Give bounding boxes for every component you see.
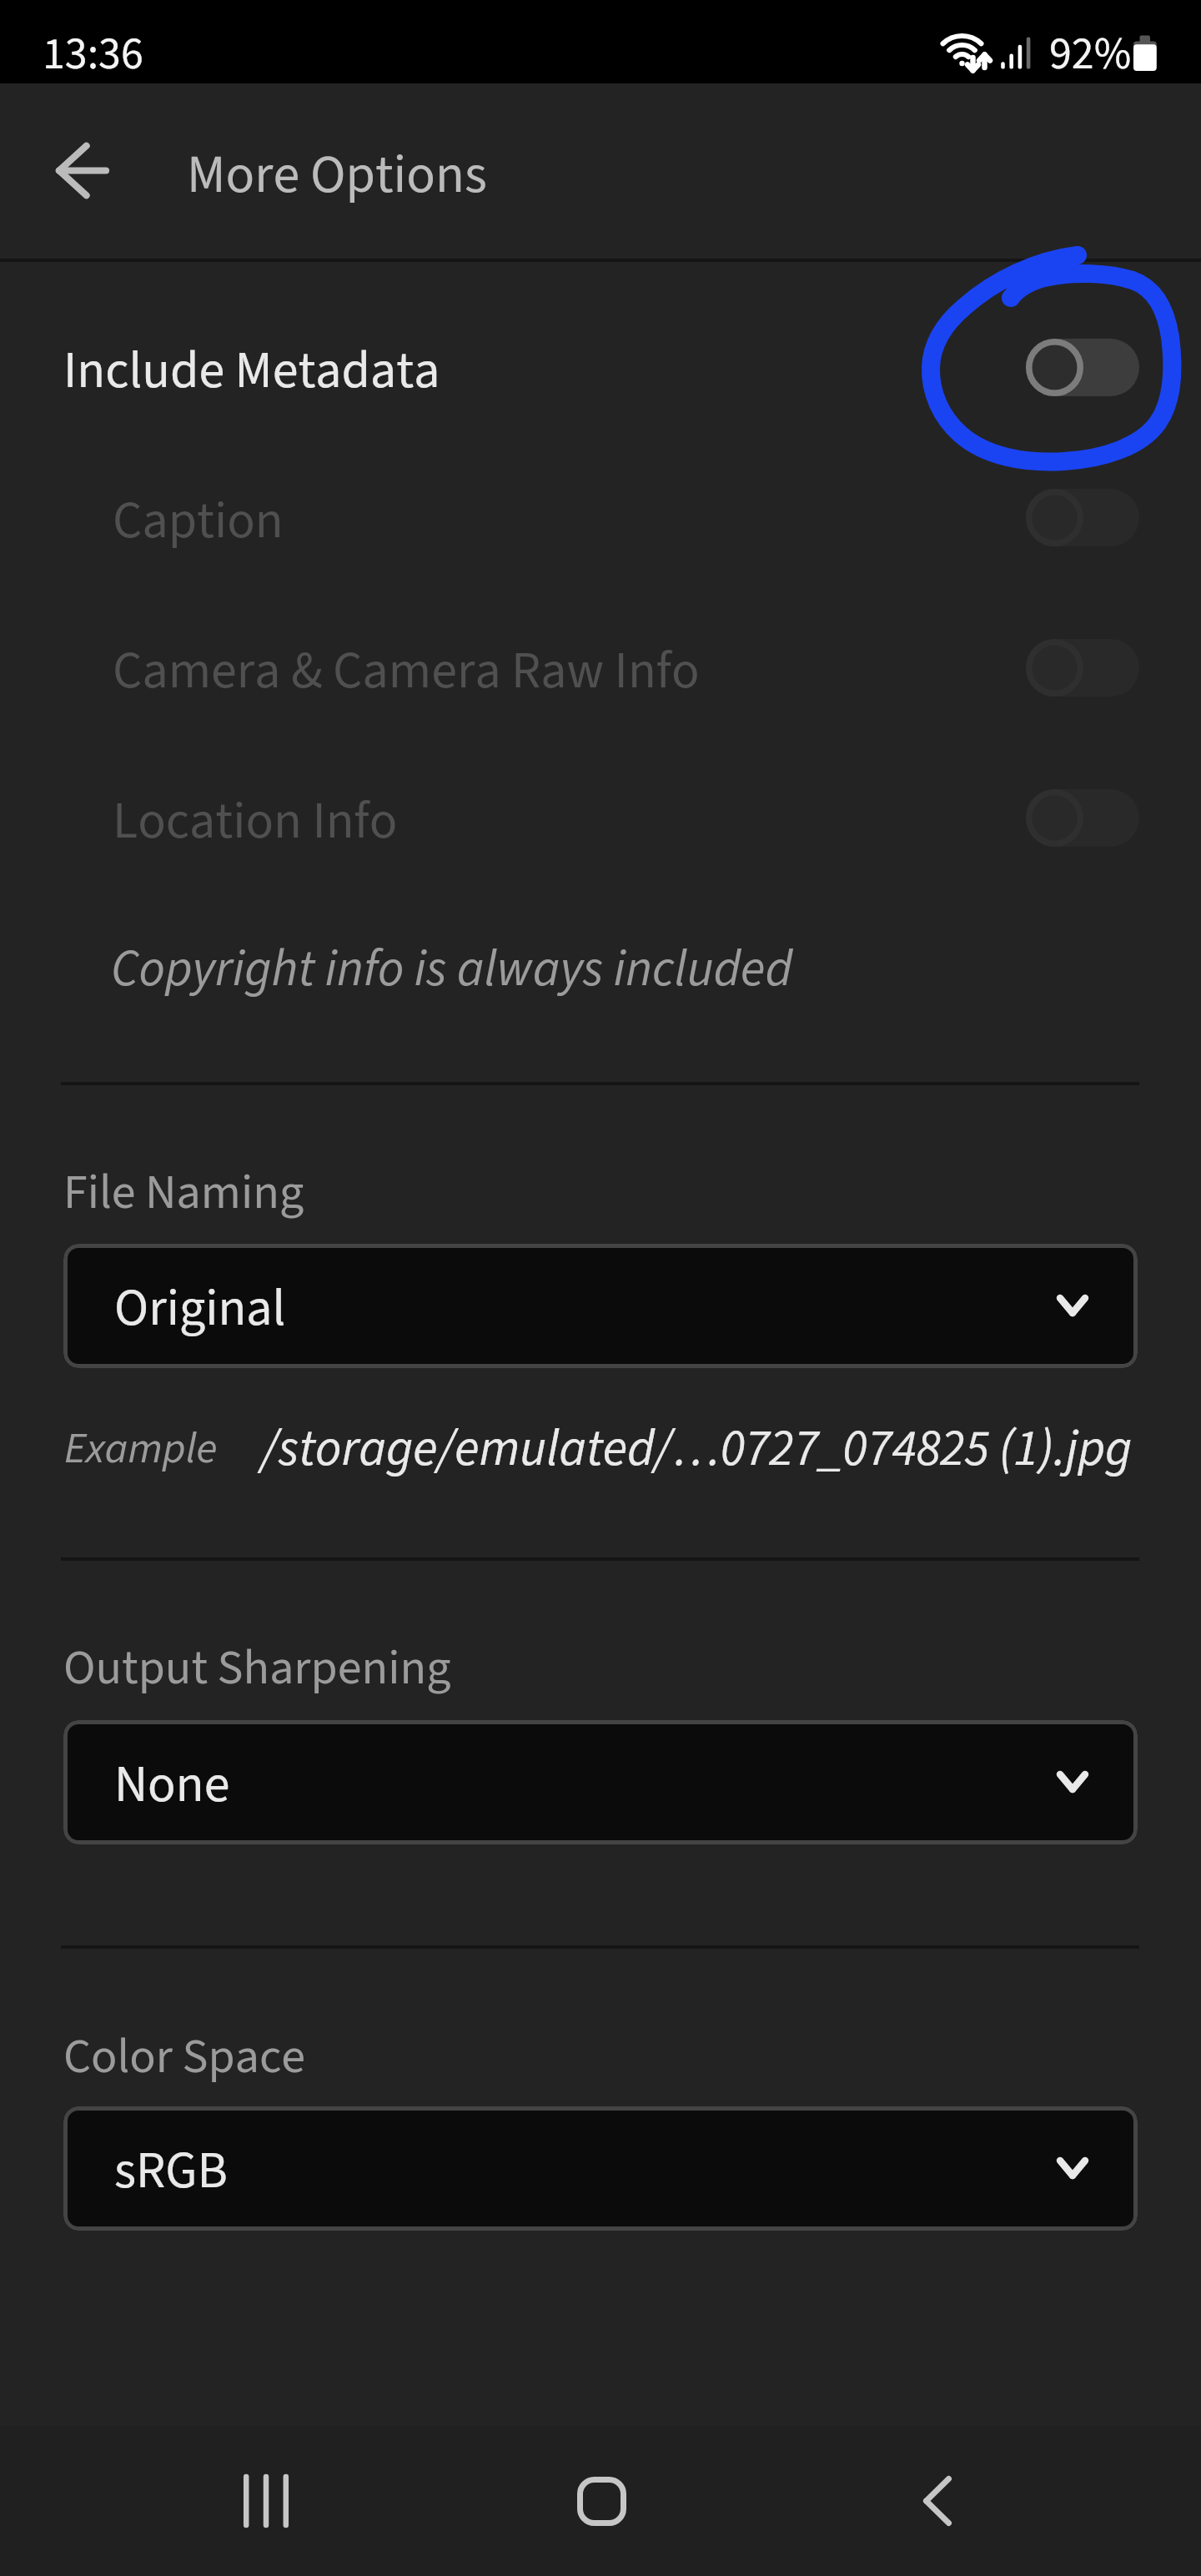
staticText: Color Space — [63, 2023, 306, 2092]
staticText: Location Info — [113, 785, 398, 858]
staticText: Caption — [113, 485, 284, 558]
staticText: /storage/emulated/…0727_074825 (1).jpg — [261, 1413, 1133, 1486]
button[interactable]: Original — [63, 1244, 1138, 1368]
staticText: More Options — [187, 137, 487, 213]
staticText: File Naming — [63, 1159, 304, 1228]
button[interactable]: sRGB — [63, 2106, 1138, 2231]
button[interactable]: None — [63, 1720, 1138, 1844]
staticText: Camera & Camera Raw Info — [113, 635, 700, 708]
staticText: 13:36 — [43, 23, 143, 87]
staticText: 92% — [1049, 23, 1132, 87]
button[interactable]: Include Metadata — [0, 297, 1201, 444]
staticText: Example — [64, 1418, 218, 1480]
staticText: None — [114, 1748, 230, 1822]
staticText: Copyright info is always included — [111, 933, 793, 1006]
button[interactable]: Back — [837, 2426, 1038, 2576]
button[interactable]: Caption — [0, 447, 1201, 594]
button[interactable]: Location Info — [0, 747, 1201, 894]
button[interactable]: Navigate back — [0, 85, 165, 252]
staticText: sRGB — [114, 2135, 228, 2208]
button[interactable]: Home — [501, 2426, 701, 2576]
button[interactable]: Camera & Camera Raw Info — [0, 597, 1201, 744]
staticText: Original — [114, 1272, 286, 1346]
button[interactable]: Recent apps — [166, 2426, 366, 2576]
staticText: Include Metadata — [63, 335, 440, 408]
staticText: Output Sharpening — [63, 1634, 451, 1703]
